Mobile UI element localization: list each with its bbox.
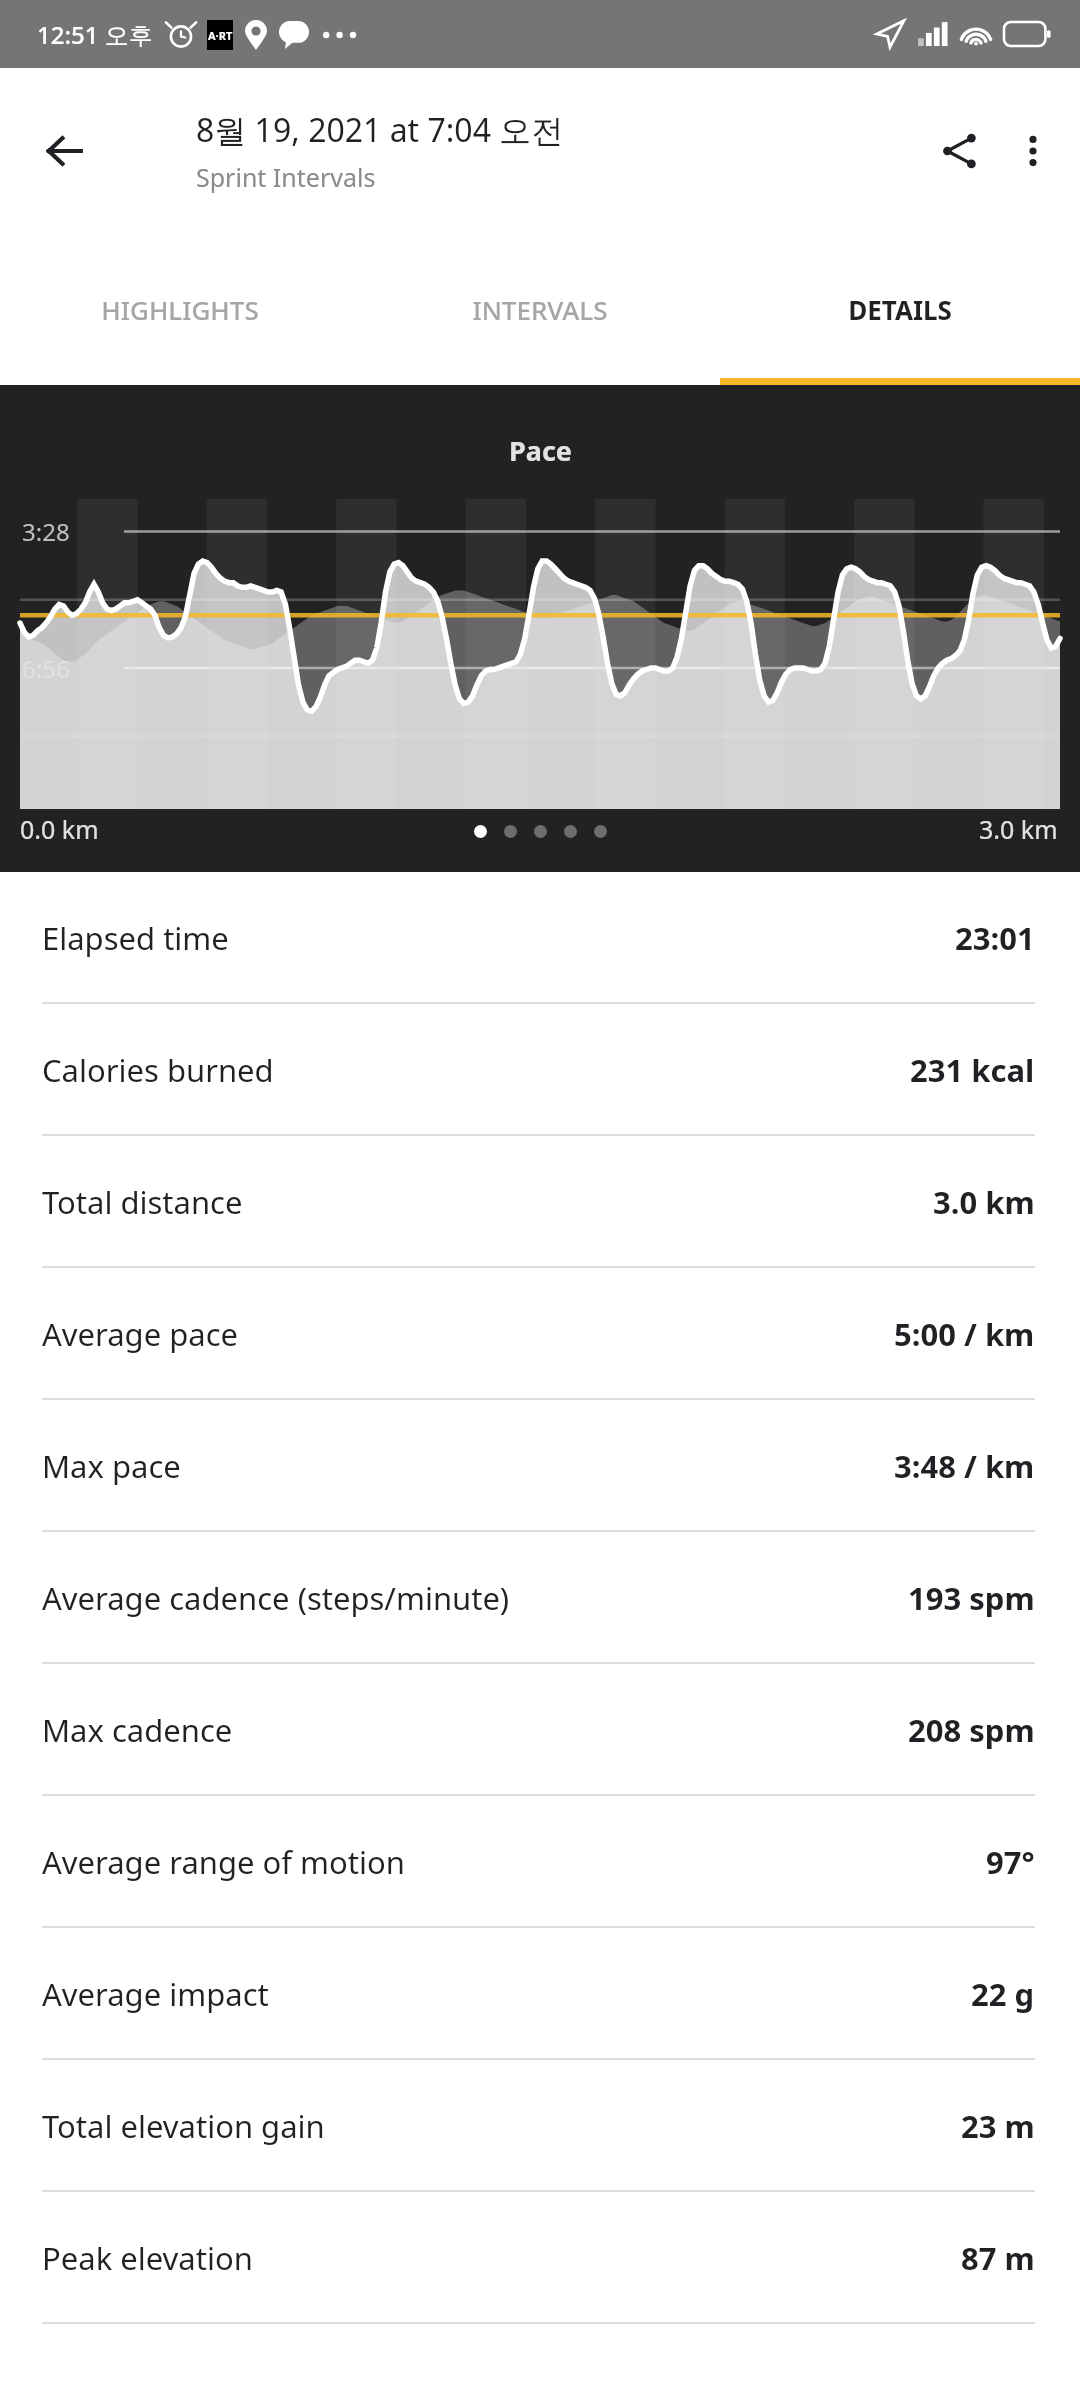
button[interactable]: Back xyxy=(28,115,100,187)
staticText: A·RT xyxy=(208,28,233,43)
button[interactable]: More options xyxy=(1000,111,1066,191)
button[interactable]: Total distance xyxy=(0,1136,1080,1268)
staticText: Sprint Intervals xyxy=(196,160,376,194)
staticText: Total distance xyxy=(42,1181,243,1223)
staticText: 6:56 xyxy=(22,652,70,685)
button[interactable]: Peak elevation xyxy=(0,2192,1080,2324)
staticText: Peak elevation xyxy=(42,2237,253,2279)
button[interactable]: Chart page 4 xyxy=(564,825,577,838)
button[interactable]: Share xyxy=(920,111,1000,191)
staticText: 8월 19, 2021 at 7:04 오전 xyxy=(196,108,564,152)
staticText: 87 m xyxy=(961,2237,1035,2279)
staticText: Average pace xyxy=(42,1313,239,1355)
staticText: 0.0 km xyxy=(20,812,99,846)
button[interactable]: DETAILS xyxy=(720,233,1080,385)
staticText: 5:00 / km xyxy=(894,1313,1035,1355)
staticText: Calories burned xyxy=(42,1049,274,1091)
staticText: Average impact xyxy=(42,1973,269,2015)
button[interactable]: HIGHLIGHTS xyxy=(0,233,360,385)
staticText: 3.0 km xyxy=(979,812,1058,846)
button[interactable]: Max cadence xyxy=(0,1664,1080,1796)
staticText: 193 spm xyxy=(908,1577,1035,1619)
staticText: 23 m xyxy=(961,2105,1035,2147)
staticText: 97° xyxy=(986,1841,1035,1883)
staticText: 3:48 / km xyxy=(894,1445,1035,1487)
staticText: Pace xyxy=(509,432,572,469)
staticText: 22 g xyxy=(971,1973,1035,2015)
staticText: 231 kcal xyxy=(910,1049,1035,1091)
button[interactable]: Max pace xyxy=(0,1400,1080,1532)
staticText: DETAILS xyxy=(848,292,952,327)
button[interactable]: Calories burned xyxy=(0,1004,1080,1136)
staticText: 23:01 xyxy=(955,917,1035,959)
button[interactable]: Chart page 1 xyxy=(474,825,487,838)
staticText: Max cadence xyxy=(42,1709,233,1751)
staticText: Average range of motion xyxy=(42,1841,405,1883)
button[interactable]: Average cadence (steps/minute) xyxy=(0,1532,1080,1664)
staticText: HIGHLIGHTS xyxy=(101,292,259,327)
staticText: 208 spm xyxy=(908,1709,1035,1751)
button[interactable]: Average impact xyxy=(0,1928,1080,2060)
button[interactable]: Chart page 2 xyxy=(504,825,517,838)
button[interactable]: Elapsed time xyxy=(0,872,1080,1004)
button[interactable]: Total elevation gain xyxy=(0,2060,1080,2192)
staticText: 3.0 km xyxy=(933,1181,1035,1223)
staticText: Average cadence (steps/minute) xyxy=(42,1577,510,1619)
staticText: Elapsed time xyxy=(42,917,229,959)
staticText: 12:51 오후 xyxy=(37,18,153,51)
button[interactable]: Average pace xyxy=(0,1268,1080,1400)
staticText: Total elevation gain xyxy=(42,2105,325,2147)
staticText: 3:28 xyxy=(22,515,70,548)
staticText: INTERVALS xyxy=(472,292,608,327)
button[interactable]: INTERVALS xyxy=(360,233,720,385)
staticText: Max pace xyxy=(42,1445,181,1487)
button[interactable]: Average range of motion xyxy=(0,1796,1080,1928)
button[interactable]: Chart page 5 xyxy=(594,825,607,838)
button[interactable]: Chart page 3 xyxy=(534,825,547,838)
